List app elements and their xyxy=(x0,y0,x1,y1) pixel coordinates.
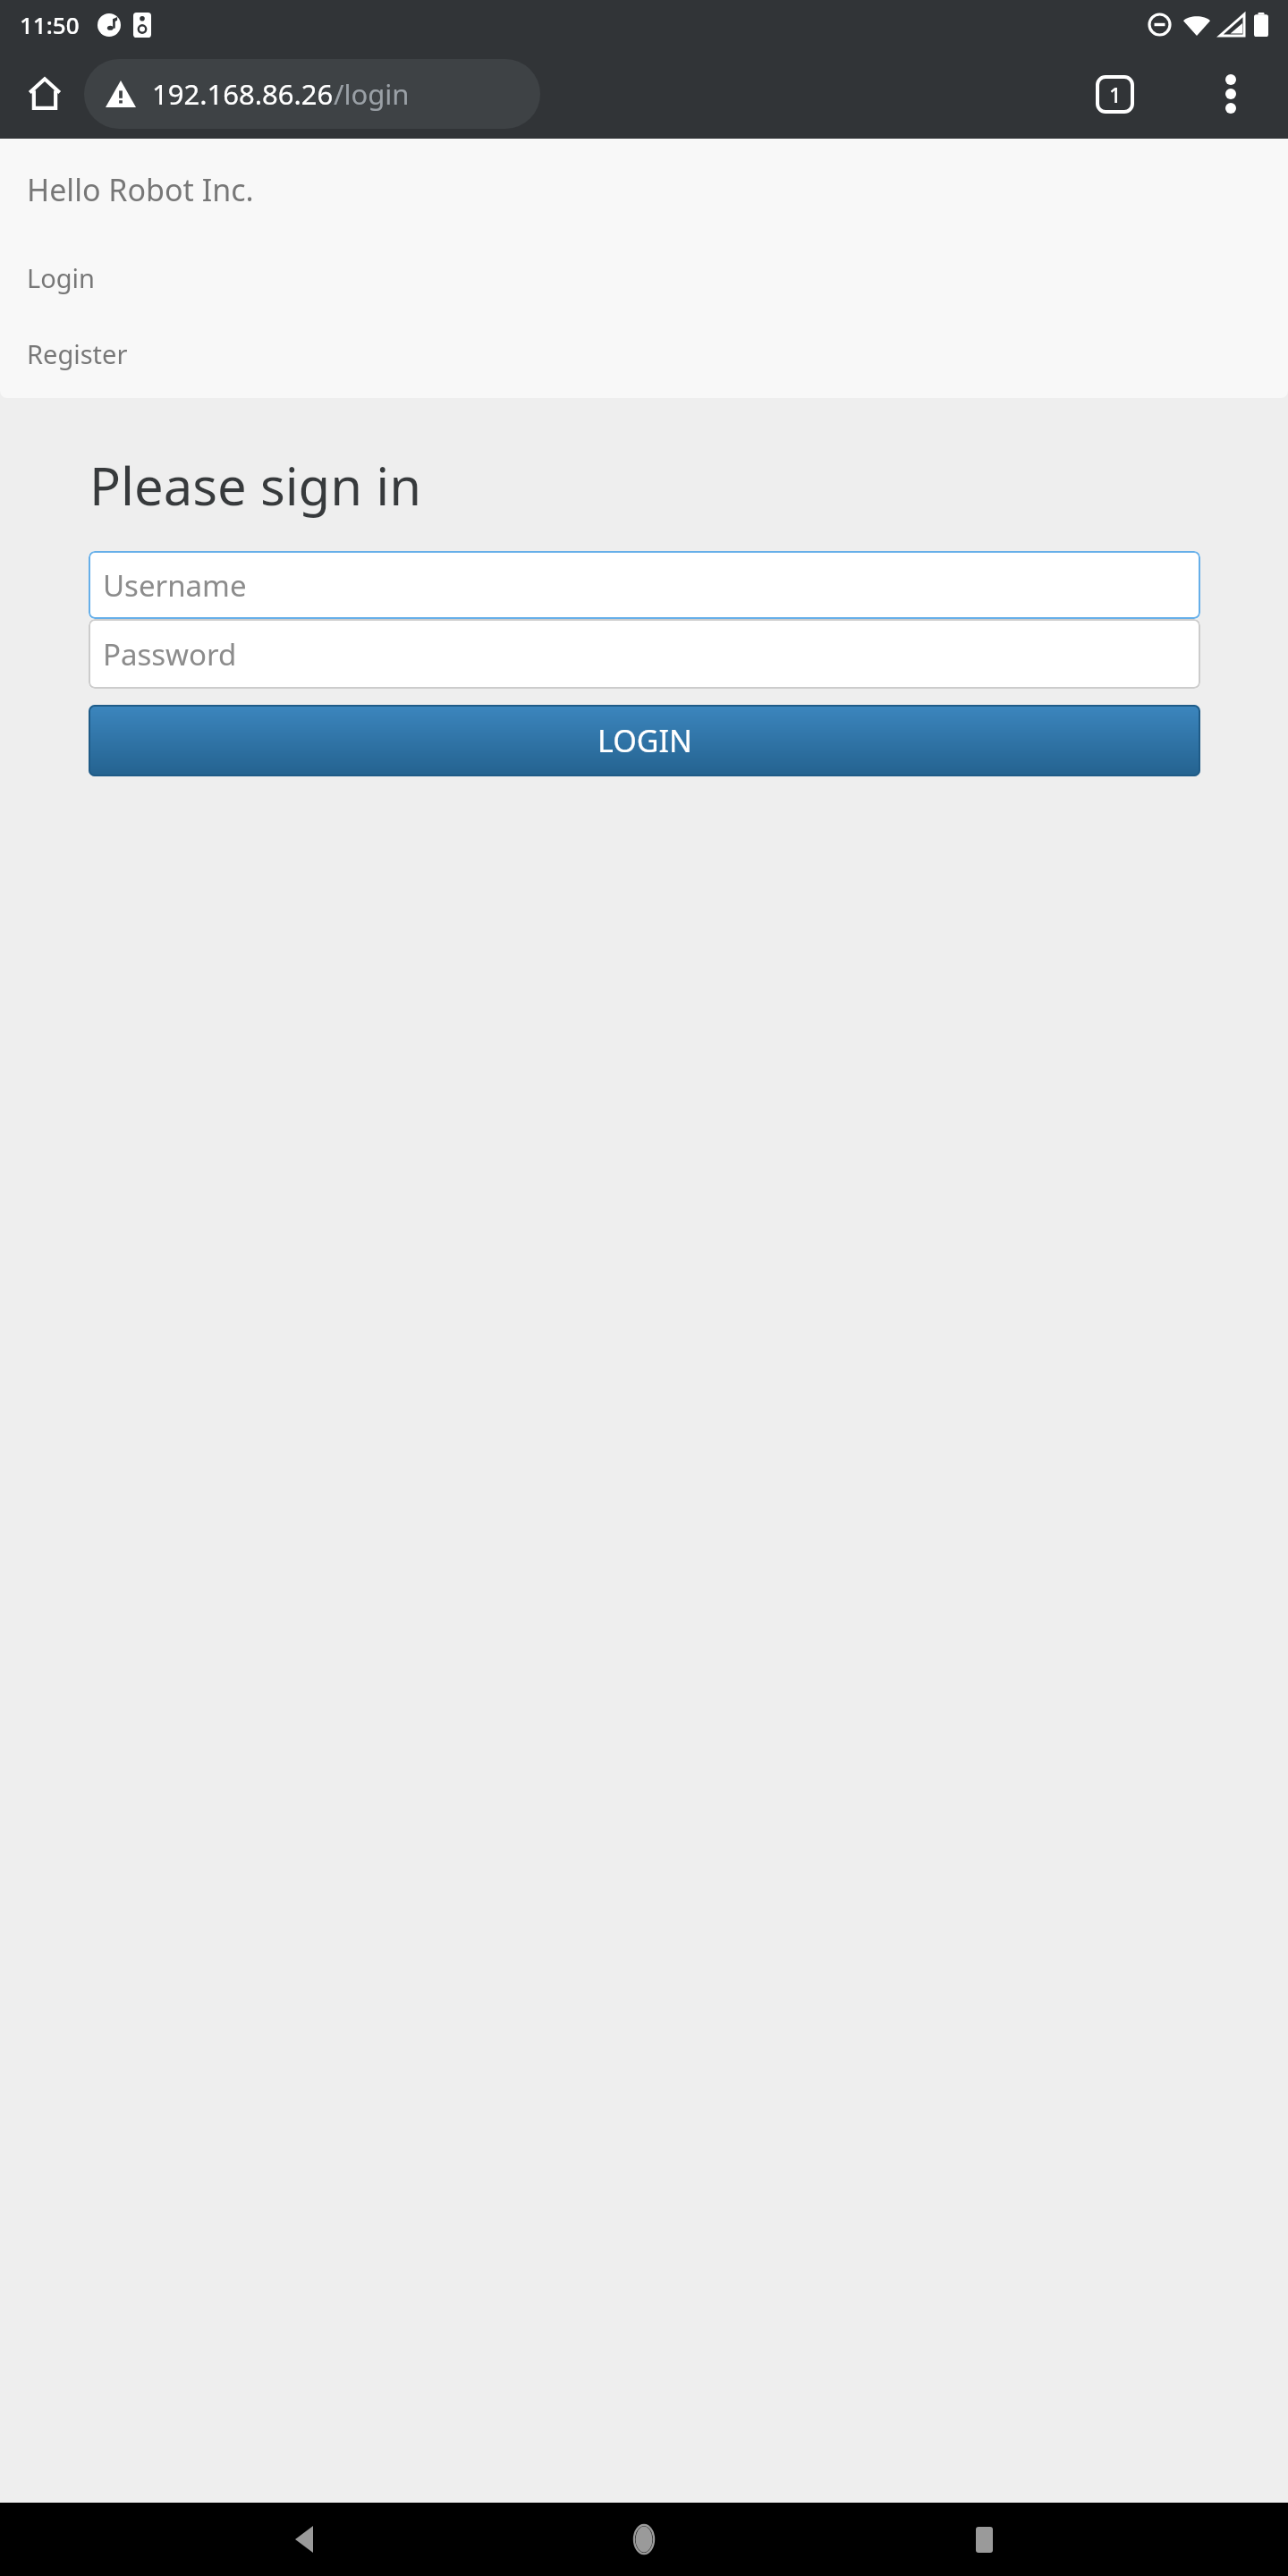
button[interactable]: Password xyxy=(89,619,1200,689)
button[interactable]: Tabs xyxy=(1084,64,1145,124)
staticText: LOGIN xyxy=(597,720,692,761)
staticText: Username xyxy=(103,565,247,606)
button[interactable]: LOGIN xyxy=(89,705,1200,776)
button[interactable]: Home xyxy=(608,2504,680,2575)
button[interactable]: Login xyxy=(0,251,1288,304)
staticText: /login xyxy=(334,75,410,113)
staticText: Hello Robot Inc. xyxy=(27,169,254,210)
staticText: 192.168.86.26 xyxy=(152,75,334,113)
button[interactable]: Home xyxy=(14,64,75,124)
staticText: Please sign in xyxy=(89,450,422,521)
staticText: Register xyxy=(27,336,128,371)
button[interactable]: Hello Robot Inc. xyxy=(0,160,281,219)
button[interactable]: 192.168.86.26 xyxy=(84,59,540,129)
button[interactable]: Username xyxy=(89,551,1200,619)
staticText: Login xyxy=(27,260,95,295)
button[interactable]: More options xyxy=(1200,64,1261,124)
button[interactable]: Recent apps xyxy=(948,2504,1020,2575)
button[interactable]: Register xyxy=(0,327,1288,380)
staticText: 1 xyxy=(1109,80,1122,109)
button[interactable]: Back xyxy=(268,2504,340,2575)
staticText: Password xyxy=(103,634,237,674)
staticText: 11:50 xyxy=(20,9,80,40)
